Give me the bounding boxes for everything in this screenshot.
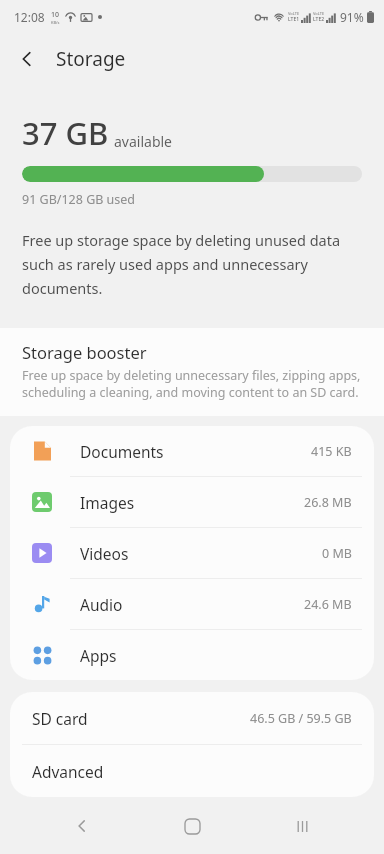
button[interactable]: SD card	[10, 692, 374, 744]
staticText: KB/s	[51, 20, 60, 25]
staticText: Storage booster	[22, 341, 147, 363]
staticText: 26.8 MB	[304, 494, 352, 511]
button[interactable]: Audio	[10, 579, 374, 629]
button[interactable]: Back	[6, 38, 48, 80]
staticText: VoLTE	[313, 11, 325, 16]
staticText: Apps	[80, 645, 117, 666]
staticText: VoLTE	[288, 11, 300, 16]
staticText: 91 GB/128 GB used	[22, 191, 136, 208]
staticText: LTE1	[288, 16, 300, 23]
staticText: 12:08	[14, 9, 45, 25]
button[interactable]: Home	[164, 798, 220, 854]
staticText: SD card	[32, 708, 88, 729]
button[interactable]: Videos	[10, 528, 374, 578]
staticText: 10	[51, 10, 60, 20]
staticText: available	[114, 132, 173, 151]
button[interactable]: Back	[54, 798, 110, 854]
staticText: 46.5 GB / 59.5 GB	[250, 710, 352, 727]
staticText: 415 KB	[311, 443, 352, 460]
button[interactable]: Apps	[10, 630, 374, 680]
staticText: Documents	[80, 441, 164, 462]
staticText: Free up storage space by deleting unused…	[22, 230, 362, 298]
staticText: 91%	[340, 9, 364, 25]
button[interactable]: Advanced	[10, 745, 374, 797]
staticText: Images	[80, 492, 135, 513]
staticText: Free up space by deleting unnecessary fi…	[22, 367, 362, 400]
button[interactable]: Recent apps	[274, 798, 330, 854]
staticText: LTE2	[313, 16, 325, 23]
staticText: Videos	[80, 543, 129, 564]
button[interactable]: Images	[10, 477, 374, 527]
staticText: Advanced	[32, 761, 104, 782]
staticText: 0 MB	[322, 545, 352, 562]
staticText: Storage	[56, 46, 126, 72]
staticText: 24.6 MB	[304, 596, 352, 613]
staticText: 37 GB	[22, 112, 109, 154]
button[interactable]: Storage booster	[0, 328, 384, 416]
staticText: Audio	[80, 594, 123, 615]
button[interactable]: Documents	[10, 426, 374, 476]
